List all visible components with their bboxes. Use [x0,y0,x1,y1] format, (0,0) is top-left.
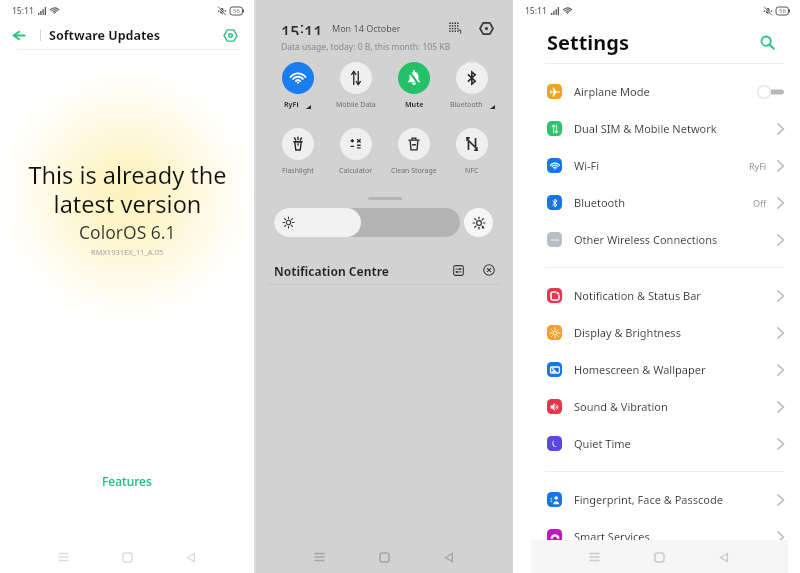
staticText: RyFi [284,100,299,110]
staticText: Dual SIM & Mobile Network [574,121,717,136]
button[interactable]: Back [436,544,462,570]
staticText: NFC [465,166,479,176]
button[interactable]: NFC [443,128,501,176]
staticText: Software Updates [49,27,161,44]
staticText: Features [102,473,152,489]
button[interactable]: Notification settings [449,263,467,277]
staticText: Calculator [339,166,373,176]
button[interactable]: Search [756,31,778,53]
staticText: Bluetooth [450,100,483,110]
staticText: Bluetooth [574,195,626,210]
button[interactable]: Settings [477,21,495,35]
button[interactable]: Clean Storage [385,128,443,176]
button[interactable]: Quiet Time [513,425,800,462]
button[interactable]: Mute [385,62,443,110]
staticText: 15 [281,21,300,35]
staticText: Airplane Mode [574,84,650,99]
button[interactable]: Home [646,544,672,570]
button[interactable]: Home [371,544,397,570]
staticText: 15:11 [12,5,34,17]
staticText: Display & Brightness [574,325,681,340]
button[interactable]: Sound & Vibration [513,388,800,425]
staticText: Quiet Time [574,436,631,451]
button[interactable]: Calculator [327,128,385,176]
button[interactable]: Back [178,544,204,570]
button[interactable]: Dual SIM & Mobile Network [513,110,800,147]
button[interactable]: Update settings [220,25,240,45]
button[interactable]: Edit tiles [446,21,464,35]
button[interactable]: Clear all notifications [480,263,498,277]
staticText: 56 [779,7,786,15]
button[interactable]: Features [92,469,162,493]
button[interactable]: Recents [581,544,607,570]
staticText: Data usage, today: 0 B, this month: 105 … [281,41,451,53]
staticText: Clean Storage [391,166,437,176]
button[interactable]: RyFi [268,62,327,110]
staticText: Homescreen & Wallpaper [574,362,706,377]
staticText: Notification Centre [274,263,390,277]
staticText: RMX1931EX_11_A.05 [91,247,164,257]
staticText: Fingerprint, Face & Passcode [574,492,723,507]
staticText: Mobile Data [336,100,376,110]
button[interactable]: Brightness [274,208,460,237]
staticText: Other Wireless Connections [574,232,718,247]
button[interactable]: Bluetooth [513,184,800,221]
button[interactable]: Airplane Mode [513,73,800,110]
staticText: 56 [233,7,240,15]
button[interactable]: Mobile Data [327,62,385,110]
button[interactable]: Recents [306,544,332,570]
staticText: Mon 14 October [332,22,401,34]
button[interactable]: Bluetooth [443,62,501,110]
button[interactable]: Homescreen & Wallpaper [513,351,800,388]
staticText: Mute [405,100,424,110]
button[interactable]: Home [114,544,140,570]
button[interactable]: Wi-Fi [513,147,800,184]
staticText: 15:11 [525,5,547,17]
staticText: Sound & Vibration [574,399,668,414]
button[interactable]: Back [711,544,737,570]
staticText: Wi-Fi [574,158,600,173]
button[interactable]: Display & Brightness [513,314,800,351]
button[interactable]: Back [8,24,30,46]
staticText: Smart Services [574,529,650,544]
button[interactable]: Auto brightness [464,208,493,237]
button[interactable]: Flashlight [268,128,327,176]
staticText: Flashlight [282,166,314,176]
staticText: This is already the latest version [28,159,227,220]
staticText: Off [753,197,767,209]
button[interactable]: Fingerprint, Face & Passcode [513,481,800,518]
button[interactable]: Smart Services [513,518,800,555]
button[interactable]: Notification & Status Bar [513,277,800,314]
staticText: Settings [547,29,629,56]
button[interactable]: Recents [50,544,76,570]
staticText: Notification & Status Bar [574,288,701,303]
staticText: 11 [304,21,323,35]
staticText: RyFi [749,160,767,172]
staticText: ColorOS 6.1 [79,220,176,244]
button[interactable]: Other Wireless Connections [513,221,800,258]
